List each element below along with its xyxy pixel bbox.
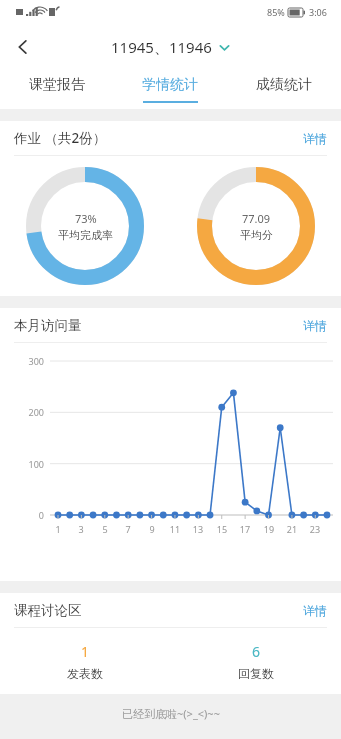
staticText: 作业 （共2份） (14, 129, 107, 147)
button[interactable]: 11945、11946 (111, 37, 231, 57)
button[interactable]: Back (0, 24, 45, 69)
staticText: 回复数 (238, 666, 274, 681)
button[interactable]: 6 (170, 628, 341, 694)
staticText: 17 (236, 523, 254, 535)
button[interactable]: 成绩统计 (227, 69, 341, 109)
staticText: 6 (252, 642, 261, 661)
staticText: 详情 (303, 603, 327, 618)
staticText: 本月访问量 (14, 317, 82, 334)
staticText: 发表数 (67, 666, 103, 681)
staticText: 5 (96, 523, 114, 535)
staticText: 23 (306, 523, 324, 535)
button[interactable]: 1 (0, 628, 170, 694)
staticText: 平均完成率 (58, 228, 113, 242)
staticText: 已经到底啦~(>_<)~~ (122, 706, 220, 721)
staticText: 0 (14, 509, 44, 521)
button[interactable]: 详情 (303, 318, 327, 333)
staticText: 3:06 (309, 6, 327, 18)
staticText: 77.09 (242, 211, 271, 226)
staticText: 1 (49, 523, 67, 535)
staticText: 11945、11946 (111, 37, 212, 57)
staticText: 详情 (303, 318, 327, 333)
staticText: 课堂报告 (29, 76, 85, 94)
staticText: 100 (14, 458, 44, 470)
staticText: 详情 (303, 131, 327, 146)
staticText: 成绩统计 (256, 76, 312, 94)
staticText: 学情统计 (142, 76, 198, 94)
staticText: 课程讨论区 (14, 602, 82, 619)
staticText: 19 (260, 523, 278, 535)
button[interactable]: 学情统计 (113, 69, 227, 109)
staticText: 3 (72, 523, 90, 535)
staticText: 21 (283, 523, 301, 535)
staticText: 200 (14, 406, 44, 418)
staticText: 300 (14, 355, 44, 367)
button[interactable]: 课堂报告 (0, 69, 113, 109)
staticText: 15 (213, 523, 231, 535)
staticText: 73% (75, 211, 97, 226)
button[interactable]: 详情 (303, 603, 327, 618)
staticText: 85% (267, 6, 285, 18)
button[interactable]: 详情 (303, 131, 327, 146)
staticText: 11 (166, 523, 184, 535)
staticText: 1 (81, 642, 90, 661)
staticText: 13 (189, 523, 207, 535)
staticText: 平均分 (240, 228, 273, 242)
staticText: 9 (143, 523, 161, 535)
staticText: 7 (119, 523, 137, 535)
